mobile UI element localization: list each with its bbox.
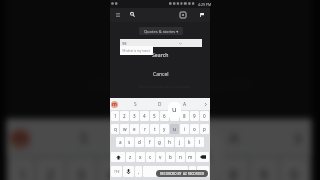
button[interactable]: Voice input xyxy=(123,166,134,177)
staticText: a xyxy=(119,139,122,145)
staticText: 3 xyxy=(133,113,136,119)
button[interactable]: S xyxy=(52,119,113,155)
button[interactable]: Enter xyxy=(197,166,209,177)
button[interactable]: Shift xyxy=(111,152,125,162)
staticText: d xyxy=(138,139,141,145)
staticText: 3 xyxy=(77,165,86,180)
button[interactable]: Search xyxy=(151,50,170,59)
button[interactable]: S xyxy=(125,98,145,110)
button[interactable]: Cancel xyxy=(151,70,171,79)
button[interactable]: 9 xyxy=(190,111,199,121)
staticText: m xyxy=(112,101,117,108)
staticText: Select dictionaries & encyclopedias xyxy=(92,79,253,91)
button[interactable]: l xyxy=(195,137,204,147)
button[interactable]: i xyxy=(180,124,189,134)
staticText: g xyxy=(158,139,161,145)
staticText: 98 xyxy=(122,41,127,46)
staticText: , xyxy=(138,169,140,175)
button[interactable]: p xyxy=(200,124,209,134)
button[interactable]: A xyxy=(205,119,266,155)
button[interactable]: u xyxy=(170,124,179,134)
button[interactable]: 1 xyxy=(111,111,119,121)
button[interactable]: Backspace xyxy=(196,152,209,162)
button[interactable]: g xyxy=(155,137,164,147)
button[interactable]: Quotes & stories ▾ xyxy=(139,27,183,35)
button[interactable]: More suggestions xyxy=(202,101,209,108)
button[interactable]: 2 xyxy=(120,111,129,121)
button[interactable]: 7 xyxy=(189,158,217,180)
button[interactable]: Cancel xyxy=(131,33,192,61)
button[interactable]: A xyxy=(175,98,195,110)
button[interactable]: Keyboard settings xyxy=(111,101,118,108)
button[interactable]: Search xyxy=(127,9,138,20)
staticText: 5 xyxy=(153,113,156,119)
button[interactable]: 98 xyxy=(120,39,202,47)
staticText: t xyxy=(154,126,156,132)
button[interactable]: j xyxy=(175,137,184,147)
button[interactable]: ?1€ xyxy=(111,166,122,177)
staticText: 1 xyxy=(114,113,117,119)
button[interactable]: e xyxy=(130,124,139,134)
button[interactable]: 5 xyxy=(128,158,156,180)
button[interactable]: Keyboard settings xyxy=(9,128,31,149)
staticText: w xyxy=(123,126,127,132)
button[interactable]: 4 xyxy=(140,111,149,121)
button[interactable]: D xyxy=(128,119,189,155)
staticText: 5 xyxy=(138,165,147,180)
button[interactable]: 8 xyxy=(220,158,247,180)
staticText: i xyxy=(184,126,186,132)
button[interactable]: b xyxy=(166,152,175,162)
button[interactable]: D xyxy=(150,98,170,110)
button[interactable]: x xyxy=(136,152,145,162)
button[interactable]: k xyxy=(185,137,194,147)
button[interactable]: 8 xyxy=(180,111,189,121)
button[interactable]: 9 xyxy=(250,158,278,180)
button[interactable]: 0 xyxy=(281,158,308,180)
staticText: 4:29 PM xyxy=(198,2,212,7)
button[interactable]: . xyxy=(189,166,196,177)
button[interactable]: a xyxy=(116,137,124,147)
staticText: n xyxy=(179,154,182,160)
staticText: o xyxy=(193,126,196,132)
staticText: 2 xyxy=(123,113,126,119)
staticText: ↵ xyxy=(201,169,205,174)
button[interactable]: c xyxy=(146,152,155,162)
button[interactable]: 5 xyxy=(150,111,159,121)
button[interactable]: , xyxy=(135,166,142,177)
button[interactable]: f xyxy=(145,137,154,147)
button[interactable]: o xyxy=(190,124,199,134)
button[interactable]: v xyxy=(156,152,165,162)
button[interactable]: Menu xyxy=(112,9,123,20)
button[interactable]: 6 xyxy=(159,158,186,180)
staticText: v xyxy=(159,154,162,160)
staticText: p xyxy=(203,126,206,132)
button[interactable]: 98 what is my name xyxy=(120,46,153,55)
button[interactable]: h xyxy=(165,137,174,147)
button[interactable]: Space xyxy=(143,166,188,177)
button[interactable]: 6 xyxy=(160,111,169,121)
button[interactable]: More options xyxy=(196,9,207,20)
button[interactable]: d xyxy=(135,137,144,147)
button[interactable]: r xyxy=(140,124,149,134)
button[interactable]: n xyxy=(176,152,185,162)
staticText: r xyxy=(144,126,146,132)
button[interactable]: Tabs xyxy=(177,9,188,20)
button[interactable]: z xyxy=(126,152,135,162)
button[interactable]: 3 xyxy=(130,111,139,121)
staticText: 0 xyxy=(290,165,299,180)
button[interactable]: y xyxy=(160,124,169,134)
button[interactable]: w xyxy=(120,124,129,134)
button[interactable]: m xyxy=(186,152,195,162)
button[interactable]: q xyxy=(111,124,119,134)
staticText: 9 xyxy=(260,165,269,180)
button[interactable]: s xyxy=(125,137,134,147)
button[interactable]: 4 xyxy=(98,158,125,180)
button[interactable]: 7 xyxy=(170,111,179,121)
button[interactable]: 0 xyxy=(200,111,209,121)
button[interactable]: t xyxy=(150,124,159,134)
